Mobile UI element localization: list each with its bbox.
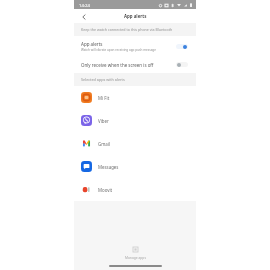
staticText: App alerts xyxy=(124,13,147,19)
staticText: Keep the watch connected to this phone v… xyxy=(81,27,173,32)
staticText: 14:24 xyxy=(79,2,90,8)
button[interactable]: Toggle off xyxy=(176,62,188,67)
staticText: Messages xyxy=(98,164,119,170)
staticText: Gmail xyxy=(98,141,111,147)
staticText: Moovit xyxy=(98,187,113,193)
staticText: Only receive when the screen is off xyxy=(81,62,176,68)
button[interactable]: Mi Fit xyxy=(74,86,196,109)
button[interactable]: Gmail xyxy=(74,132,196,155)
button[interactable]: Manage apps xyxy=(125,247,146,259)
staticText: App alerts xyxy=(81,41,103,47)
button[interactable]: Toggle on xyxy=(176,44,188,49)
button[interactable]: Messages xyxy=(74,155,196,178)
button[interactable]: Back xyxy=(78,11,89,22)
button[interactable]: Viber xyxy=(74,109,196,132)
staticText: Manage apps xyxy=(125,255,146,259)
staticText: Watch will vibrate upon receiving app pu… xyxy=(81,48,156,52)
button[interactable]: Only receive when the screen is off xyxy=(74,56,196,73)
button[interactable]: App alerts xyxy=(74,36,196,56)
staticText: Viber xyxy=(98,118,109,124)
button[interactable]: Moovit xyxy=(74,178,196,201)
staticText: Mi Fit xyxy=(98,95,110,101)
staticText: Selected apps with alerts xyxy=(81,77,125,82)
